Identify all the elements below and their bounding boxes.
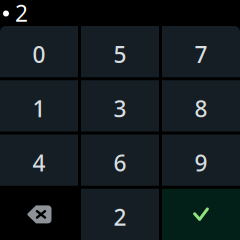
- staticText: 7: [194, 39, 207, 69]
- button[interactable]: 5: [81, 26, 159, 77]
- button[interactable]: 8: [162, 80, 240, 131]
- staticText: 1: [32, 93, 45, 123]
- staticText: 0: [32, 39, 45, 69]
- staticText: 2: [15, 0, 28, 28]
- button[interactable]: 0: [0, 26, 78, 77]
- staticText: 6: [113, 148, 126, 178]
- staticText: 2: [113, 202, 126, 232]
- button[interactable]: 3: [81, 80, 159, 131]
- button[interactable]: 2: [81, 189, 159, 240]
- button[interactable]: Confirm: [162, 189, 240, 240]
- staticText: 4: [32, 148, 45, 178]
- staticText: 3: [113, 93, 126, 123]
- button[interactable]: 6: [81, 134, 159, 186]
- staticText: 8: [194, 93, 207, 123]
- staticText: 9: [194, 148, 207, 178]
- button[interactable]: 1: [0, 80, 78, 131]
- button[interactable]: Delete: [0, 189, 78, 240]
- staticText: 5: [113, 39, 126, 69]
- button[interactable]: 7: [162, 26, 240, 77]
- button[interactable]: 4: [0, 134, 78, 186]
- button[interactable]: 9: [162, 134, 240, 186]
